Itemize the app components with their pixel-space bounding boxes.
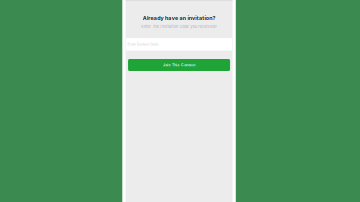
staticText: Already have an invitation? <box>143 15 215 21</box>
staticText: Enter Contest Code <box>127 42 158 46</box>
staticText: Enter the invitation code you received? <box>141 24 217 29</box>
button[interactable]: Join This Contest <box>128 59 230 71</box>
staticText: Join This Contest <box>163 63 195 67</box>
